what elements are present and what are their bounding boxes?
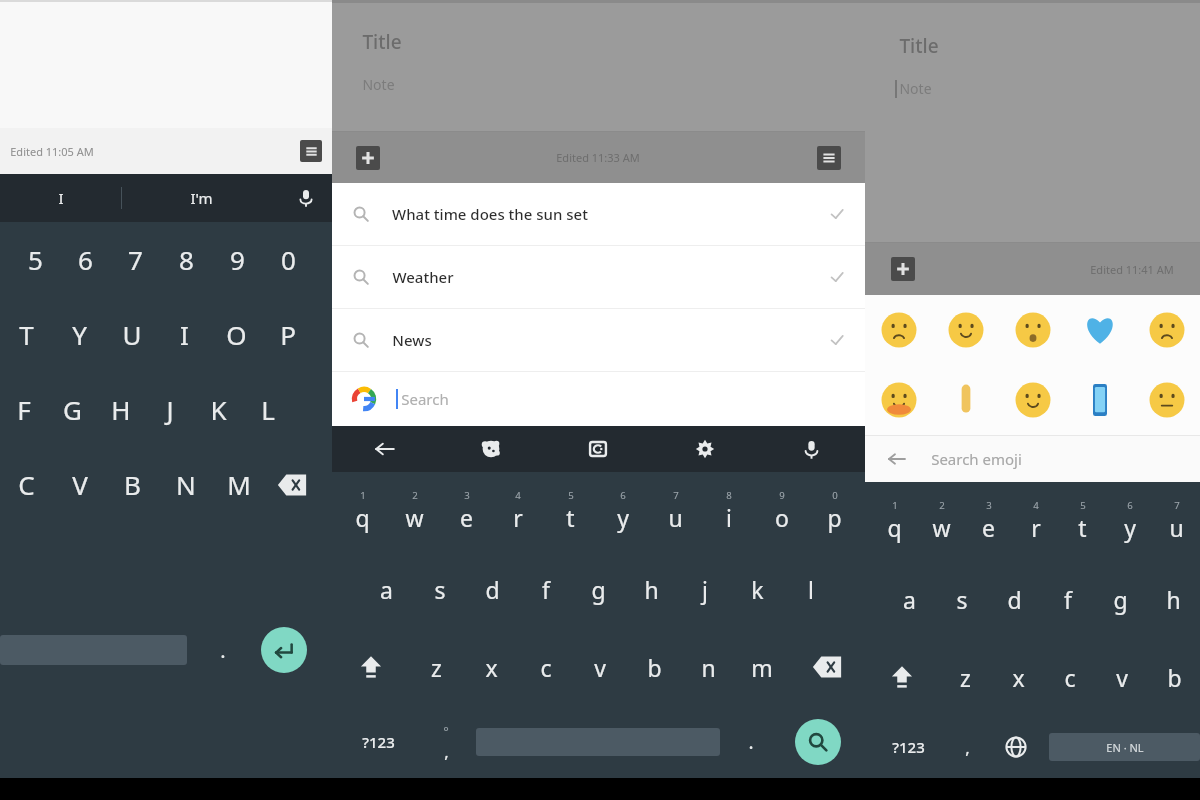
button[interactable]: Emoji <box>1136 369 1198 431</box>
button[interactable]: 9 <box>212 222 263 297</box>
button[interactable]: z <box>409 628 464 706</box>
button[interactable]: C <box>0 447 53 522</box>
button[interactable]: Emoji <box>1136 299 1198 361</box>
button[interactable]: P <box>262 297 314 372</box>
button[interactable]: z <box>939 638 992 716</box>
button[interactable]: M <box>212 447 265 522</box>
button[interactable]: 3 <box>965 482 1012 560</box>
button[interactable]: Backspace <box>265 447 318 522</box>
button[interactable]: h <box>625 550 678 628</box>
button[interactable]: H <box>96 372 145 447</box>
button[interactable]: Voice input <box>280 174 332 222</box>
button[interactable]: Weather <box>332 246 865 308</box>
button[interactable]: G <box>48 372 96 447</box>
button[interactable]: Emoji <box>935 299 997 361</box>
button[interactable]: h <box>1147 560 1200 638</box>
button[interactable]: c <box>519 628 573 706</box>
button[interactable]: 4 <box>1012 482 1059 560</box>
button[interactable]: d <box>988 560 1041 638</box>
button[interactable]: b <box>627 628 681 706</box>
button[interactable]: 7 <box>649 472 702 550</box>
button[interactable]: v <box>1096 638 1148 716</box>
button[interactable]: v <box>573 628 627 706</box>
button[interactable]: 6 <box>60 222 110 297</box>
button[interactable]: Shift <box>332 628 409 706</box>
button[interactable]: B <box>106 447 159 522</box>
button[interactable]: ?123 <box>338 706 419 778</box>
button[interactable]: Backspace <box>789 628 865 706</box>
button[interactable]: J <box>145 372 194 447</box>
button[interactable]: s <box>413 550 466 628</box>
button[interactable]: ?123 <box>871 716 945 778</box>
button[interactable]: 6 <box>596 472 649 550</box>
button[interactable]: m <box>735 628 789 706</box>
button[interactable]: 5 <box>544 472 596 550</box>
button[interactable]: Emoji <box>1069 369 1131 431</box>
button[interactable]: k <box>731 550 784 628</box>
button[interactable]: s <box>935 560 988 638</box>
button[interactable]: ° <box>419 706 472 778</box>
button[interactable]: Add <box>891 257 915 281</box>
button[interactable]: j <box>678 550 731 628</box>
button[interactable]: 7 <box>110 222 161 297</box>
button[interactable]: Emoji <box>935 369 997 431</box>
button[interactable]: 6 <box>1106 482 1153 560</box>
button[interactable]: 3 <box>440 472 492 550</box>
button[interactable]: a <box>360 550 413 628</box>
button[interactable]: Menu <box>817 146 841 170</box>
button[interactable]: f <box>519 550 572 628</box>
button[interactable]: 5 <box>1059 482 1106 560</box>
button[interactable]: f <box>1041 560 1094 638</box>
button[interactable]: O <box>210 297 262 372</box>
button[interactable]: n <box>681 628 735 706</box>
button[interactable]: x <box>464 628 519 706</box>
button[interactable]: What time does the sun set <box>332 183 865 245</box>
button[interactable]: 8 <box>702 472 755 550</box>
button[interactable]: 8 <box>161 222 212 297</box>
button[interactable]: Change language <box>989 716 1043 778</box>
button[interactable]: Y <box>53 297 106 372</box>
button[interactable]: News <box>332 309 865 371</box>
button[interactable]: Add <box>356 146 380 170</box>
button[interactable]: I <box>0 174 121 222</box>
button[interactable]: 0 <box>808 472 861 550</box>
button[interactable]: . <box>197 522 249 778</box>
button[interactable]: V <box>53 447 106 522</box>
button[interactable]: 2 <box>388 472 440 550</box>
button[interactable]: . <box>724 706 777 778</box>
button[interactable]: Search <box>332 372 865 426</box>
button[interactable]: Search <box>795 719 841 765</box>
button[interactable]: F <box>0 372 48 447</box>
button[interactable]: U <box>106 297 158 372</box>
button[interactable]: Menu <box>300 140 322 162</box>
button[interactable]: L <box>243 372 292 447</box>
button[interactable]: K <box>194 372 243 447</box>
button[interactable]: 0 <box>263 222 314 297</box>
button[interactable]: Settings <box>651 426 758 472</box>
button[interactable]: Shift <box>865 638 939 716</box>
button[interactable]: 9 <box>755 472 808 550</box>
button[interactable]: Voice input <box>758 426 865 472</box>
button[interactable]: b <box>1148 638 1200 716</box>
button[interactable]: 1 <box>871 482 918 560</box>
button[interactable]: Back <box>332 426 438 472</box>
button[interactable]: Emoji <box>868 369 930 431</box>
button[interactable]: Space <box>1049 733 1200 761</box>
button[interactable]: l <box>784 550 837 628</box>
button[interactable]: d <box>466 550 519 628</box>
button[interactable]: 2 <box>918 482 965 560</box>
button[interactable]: 7 <box>1153 482 1200 560</box>
button[interactable]: g <box>572 550 625 628</box>
button[interactable]: , <box>945 716 989 778</box>
button[interactable]: 4 <box>492 472 544 550</box>
button[interactable]: N <box>159 447 212 522</box>
button[interactable]: Emoji <box>1002 299 1064 361</box>
button[interactable]: Search emoji <box>865 436 1200 482</box>
button[interactable]: Enter <box>261 627 307 673</box>
button[interactable]: I'm <box>122 174 280 222</box>
button[interactable]: x <box>992 638 1044 716</box>
button[interactable]: T <box>0 297 53 372</box>
button[interactable]: 5 <box>10 222 60 297</box>
